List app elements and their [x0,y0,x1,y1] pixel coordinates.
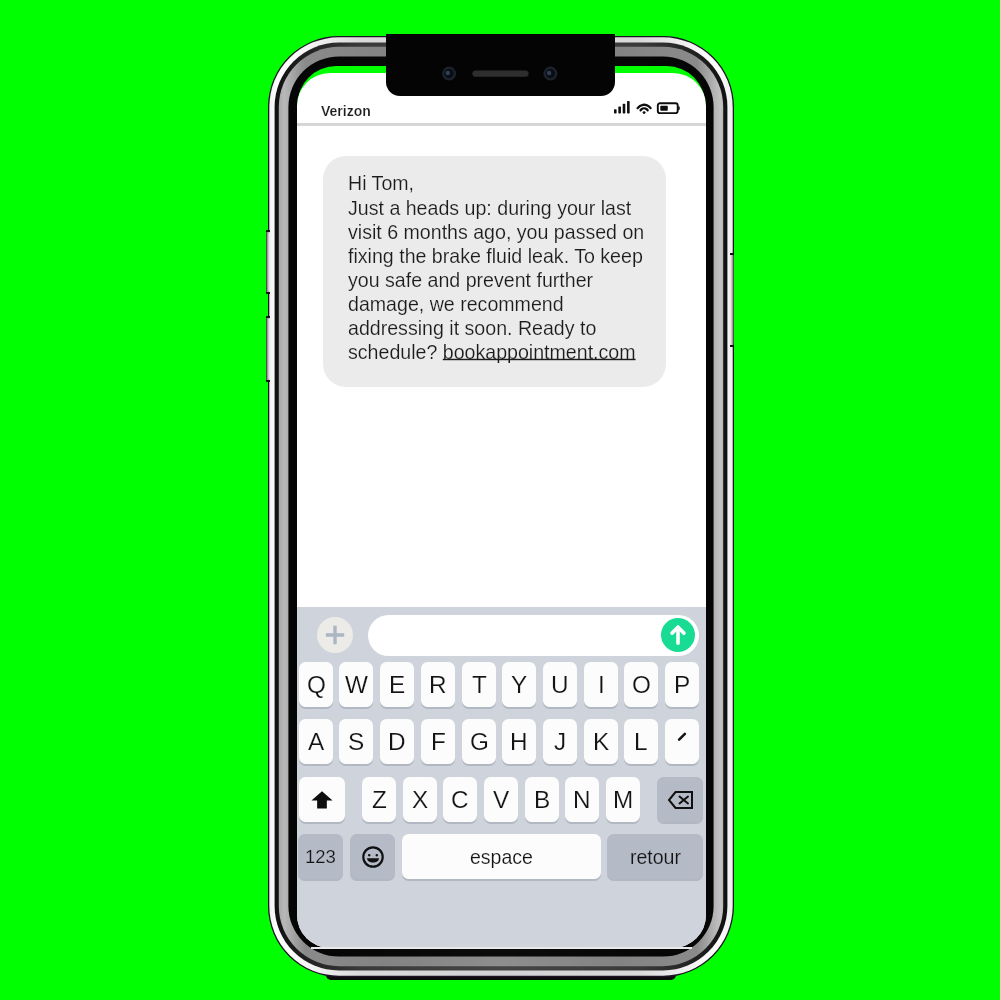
button[interactable]: Hi Tom, Just a heads up: during your las… [323,156,666,387]
button[interactable]: D [380,719,414,764]
staticText: H [510,728,528,755]
staticText: G [470,728,489,755]
button[interactable]: Y [502,662,536,707]
button[interactable]: O [624,662,658,707]
button[interactable]: E [380,662,414,707]
button[interactable]: 123 [298,834,343,879]
button[interactable]: Z [362,777,396,822]
staticText: F [431,728,446,755]
button[interactable]: espace [402,834,601,879]
staticText: retour [630,846,681,868]
staticText: R [429,671,447,698]
staticText: S [348,728,365,755]
button[interactable]: Message [368,615,699,656]
button[interactable]: Q [299,662,333,707]
staticText: Q [307,671,326,698]
button[interactable]: P [665,662,699,707]
staticText: K [593,728,610,755]
button[interactable]: retour [607,834,703,879]
button[interactable]: Backspace [657,777,703,822]
staticText: I [598,671,605,698]
staticText: Z [372,786,387,813]
staticText: L [634,728,648,755]
staticText: N [573,786,591,813]
button[interactable]: Emoji [350,834,395,879]
staticText: O [632,671,651,698]
button[interactable]: X [403,777,437,822]
button[interactable]: Add attachment [317,617,353,653]
button[interactable]: V [484,777,518,822]
button[interactable]: W [339,662,373,707]
staticText: espace [470,846,533,868]
button[interactable]: N [565,777,599,822]
staticText: V [493,786,510,813]
button[interactable]: B [525,777,559,822]
staticText: A [308,728,325,755]
button[interactable]: Send [661,618,695,652]
staticText: 123 [305,846,336,867]
staticText: X [412,786,429,813]
staticText: Y [511,671,528,698]
staticText: T [472,671,487,698]
button[interactable]: Shift [299,777,345,822]
staticText: B [534,786,551,813]
button[interactable]: C [443,777,477,822]
button[interactable]: G [462,719,496,764]
staticText: Verizon [321,103,371,119]
button[interactable]: Acute accent [665,719,699,764]
button[interactable]: S [339,719,373,764]
button[interactable]: J [543,719,577,764]
staticText: J [554,728,567,755]
button[interactable]: T [462,662,496,707]
staticText: D [388,728,406,755]
staticText: E [389,671,406,698]
button[interactable]: M [606,777,640,822]
button[interactable]: U [543,662,577,707]
button[interactable]: L [624,719,658,764]
staticText: M [613,786,634,813]
button[interactable]: H [502,719,536,764]
staticText: Hi Tom, Just a heads up: during your las… [348,172,645,363]
button[interactable]: K [584,719,618,764]
button[interactable]: I [584,662,618,707]
staticText: C [451,786,469,813]
button[interactable]: F [421,719,455,764]
button[interactable]: A [299,719,333,764]
staticText: U [551,671,569,698]
button[interactable]: R [421,662,455,707]
staticText: P [674,671,691,698]
staticText: W [345,671,368,698]
